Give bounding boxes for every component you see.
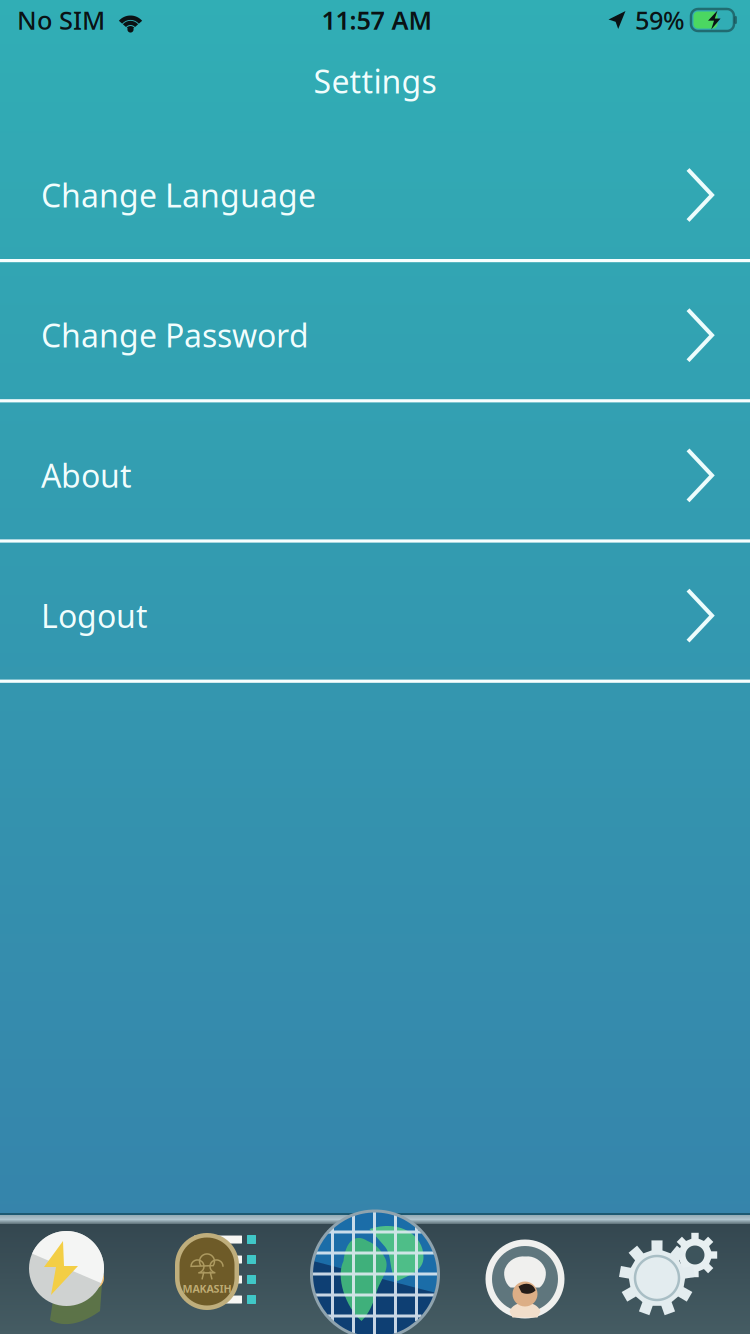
button[interactable]: Explore — [300, 1224, 450, 1334]
button[interactable]: Explore — [300, 1211, 450, 1334]
button[interactable]: Rewards — [150, 1224, 300, 1334]
staticText: Change Language — [41, 174, 316, 216]
staticText: MAKASIH — [182, 1281, 231, 1296]
staticText: Settings — [313, 60, 436, 102]
staticText: 59% — [635, 3, 685, 37]
staticText: About — [41, 454, 132, 497]
button[interactable]: Change Password — [0, 262, 750, 399]
button[interactable]: Settings — [600, 1224, 750, 1334]
staticText: Logout — [41, 594, 148, 637]
staticText: No SIM — [17, 3, 105, 37]
button[interactable]: About — [0, 402, 750, 539]
staticText: 11:57 AM — [321, 3, 432, 37]
button[interactable]: Change Language — [0, 122, 750, 259]
button[interactable]: Profile — [450, 1224, 600, 1334]
button[interactable]: Promotions — [0, 1224, 150, 1334]
button[interactable]: Logout — [0, 543, 750, 680]
staticText: Change Password — [41, 314, 309, 356]
